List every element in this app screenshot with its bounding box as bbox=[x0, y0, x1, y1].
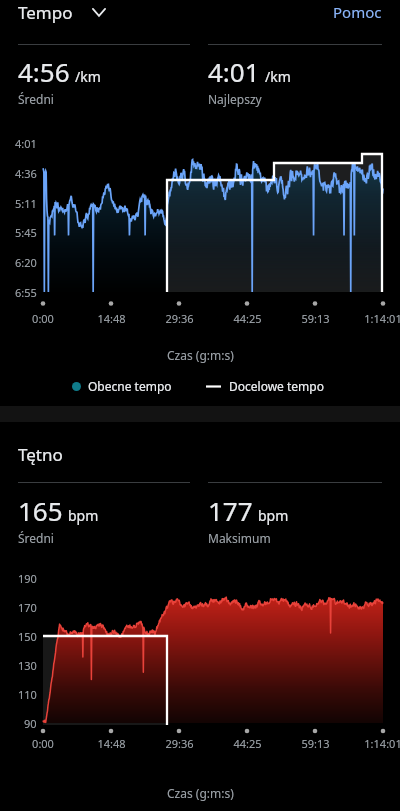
staticText: 6:55 bbox=[15, 285, 37, 300]
staticText: Czas (g:m:s) bbox=[167, 347, 234, 363]
staticText: Tętno bbox=[18, 443, 63, 466]
staticText: 6:20 bbox=[15, 255, 37, 270]
staticText: 1:14:01 bbox=[364, 311, 400, 326]
staticText: 4:56 bbox=[18, 54, 70, 89]
staticText: 177 bbox=[208, 493, 253, 528]
staticText: 0:00 bbox=[32, 311, 54, 326]
staticText: 0:00 bbox=[32, 736, 54, 751]
button[interactable]: Tętno bbox=[18, 443, 63, 466]
staticText: 90 bbox=[24, 716, 37, 731]
staticText: 59:13 bbox=[301, 311, 330, 326]
staticText: Tempo bbox=[18, 1, 73, 24]
staticText: 110 bbox=[18, 687, 37, 702]
staticText: 5:11 bbox=[15, 196, 37, 211]
staticText: 44:25 bbox=[233, 736, 262, 751]
staticText: Docelowe tempo bbox=[229, 378, 324, 394]
button[interactable]: 4:56 bbox=[18, 54, 200, 104]
staticText: 170 bbox=[18, 600, 37, 615]
staticText: 59:13 bbox=[301, 736, 330, 751]
staticText: 29:36 bbox=[165, 736, 194, 751]
staticText: 150 bbox=[18, 629, 37, 644]
staticText: Średni bbox=[18, 91, 54, 107]
staticText: 5:45 bbox=[15, 225, 37, 240]
staticText: Obecne tempo bbox=[88, 378, 172, 394]
button[interactable]: Pomoc bbox=[333, 2, 382, 22]
staticText: bpm bbox=[68, 506, 99, 525]
staticText: bpm bbox=[258, 506, 289, 525]
staticText: 4:01 bbox=[15, 136, 37, 151]
staticText: 44:25 bbox=[233, 311, 262, 326]
staticText: 1:14:01 bbox=[364, 736, 400, 751]
staticText: 14:48 bbox=[97, 736, 126, 751]
staticText: 29:36 bbox=[165, 311, 194, 326]
button[interactable]: Tempo bbox=[18, 1, 106, 24]
staticText: Maksimum bbox=[208, 530, 271, 546]
other: Rozwiń bbox=[92, 8, 106, 17]
staticText: /km bbox=[265, 67, 291, 86]
button[interactable]: 4:01 bbox=[208, 54, 390, 104]
staticText: 190 bbox=[18, 571, 37, 586]
staticText: 4:01 bbox=[208, 54, 260, 89]
staticText: 14:48 bbox=[97, 311, 126, 326]
staticText: Najlepszy bbox=[208, 91, 262, 107]
button[interactable]: 177 bbox=[208, 493, 390, 543]
staticText: Czas (g:m:s) bbox=[167, 785, 234, 801]
button[interactable]: 165 bbox=[18, 493, 200, 543]
staticText: 165 bbox=[18, 493, 63, 528]
staticText: Średni bbox=[18, 530, 54, 546]
staticText: 130 bbox=[18, 658, 37, 673]
staticText: /km bbox=[75, 67, 101, 86]
staticText: Pomoc bbox=[333, 2, 382, 22]
staticText: 4:36 bbox=[15, 166, 37, 181]
